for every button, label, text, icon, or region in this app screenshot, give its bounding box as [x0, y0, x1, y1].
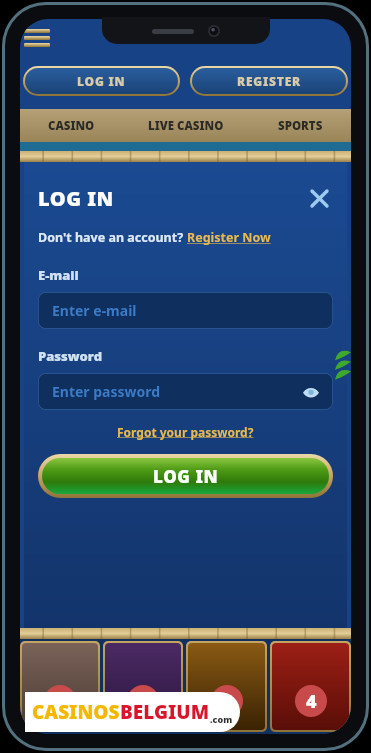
staticText: SPORTS [278, 118, 323, 134]
button[interactable]: Close [305, 184, 333, 212]
button[interactable]: LOG IN [42, 458, 329, 494]
button[interactable]: CASINO [20, 109, 122, 142]
button[interactable]: Register Now [187, 229, 271, 246]
staticText: Enter password [52, 382, 161, 401]
staticText: REGISTER [237, 73, 302, 89]
staticText: LOG IN [153, 465, 219, 488]
button[interactable]: REGISTER [192, 68, 346, 94]
staticText: CASINOS [32, 699, 120, 725]
button[interactable]: Menu [24, 29, 50, 53]
staticText: LOG IN [38, 185, 114, 212]
button[interactable]: SPORTS [249, 109, 351, 142]
staticText: CASINO [48, 118, 95, 134]
button[interactable]: 2 [105, 643, 181, 730]
staticText: E-mail [38, 266, 79, 284]
staticText: Password [38, 347, 103, 365]
button[interactable]: Enter e-mail [38, 292, 333, 329]
button[interactable]: Forgot your password? [117, 424, 254, 440]
staticText: BELGIUM [120, 699, 210, 725]
staticText: LIVE CASINO [148, 118, 224, 134]
button[interactable]: 1 [22, 643, 98, 730]
staticText: Register Now [187, 229, 271, 246]
staticText: Forgot your password? [117, 424, 254, 440]
staticText: 2 [138, 689, 149, 714]
staticText: .com [210, 713, 233, 725]
staticText: LOG IN [77, 73, 126, 89]
button[interactable]: 4 [272, 643, 349, 730]
staticText: Enter e-mail [52, 301, 137, 320]
staticText: 3 [222, 689, 233, 714]
button[interactable]: LIVE CASINO [122, 109, 249, 142]
button[interactable]: Enter password [38, 373, 333, 410]
staticText: 4 [306, 689, 317, 714]
staticText: Don't have an account? [38, 229, 187, 246]
staticText: 1 [55, 689, 66, 714]
button[interactable]: 3 [188, 643, 265, 730]
button[interactable]: Show password [301, 382, 321, 402]
button[interactable]: LOG IN [25, 68, 178, 94]
